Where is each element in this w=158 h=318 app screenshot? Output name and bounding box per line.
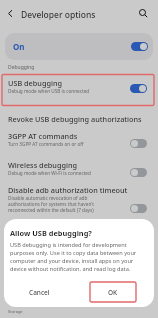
- staticText: device without notification, and read lo…: [10, 265, 131, 273]
- button[interactable]: [130, 139, 147, 148]
- staticText: Cancel: [29, 288, 50, 297]
- staticText: USB debugging: [8, 78, 62, 88]
- staticText: Allow USB debugging?: [10, 228, 92, 238]
- button[interactable]: [137, 7, 150, 20]
- staticText: purposes only. Use it to copy data betwe…: [10, 249, 137, 257]
- button[interactable]: Disable adb authorization timeout: [0, 185, 158, 213]
- button[interactable]: [130, 168, 147, 177]
- staticText: On: [13, 41, 25, 52]
- staticText: Storage: [8, 309, 23, 314]
- button[interactable]: [5, 8, 16, 19]
- button[interactable]: Wireless debugging: [0, 160, 158, 176]
- staticText: Debug mode when Wi-Fi is connected: [8, 170, 91, 176]
- staticText: USB debugging is intended for developmen…: [10, 241, 127, 249]
- staticText: Disable adb authorization timeout: [8, 185, 128, 195]
- button[interactable]: 3GPP AT commands: [0, 131, 158, 147]
- button[interactable]: OK: [90, 284, 136, 300]
- staticText: Debugging: [8, 64, 35, 71]
- staticText: Debug mode when USB is connected: [8, 88, 90, 94]
- button[interactable]: On: [5, 33, 153, 60]
- staticText: 3GPP AT commands: [8, 131, 78, 141]
- button[interactable]: [130, 84, 147, 93]
- staticText: OK: [108, 288, 118, 297]
- staticText: Turn 3GPP AT commands on or off: [8, 141, 84, 147]
- staticText: Developer options: [21, 9, 96, 21]
- staticText: Disable automatic revocation of adb: [8, 195, 88, 201]
- button[interactable]: USB debugging: [0, 78, 158, 94]
- staticText: reconnected within the default (7 days): [8, 207, 94, 213]
- button[interactable]: [131, 42, 148, 51]
- staticText: authorizations for systems that haven't: [8, 201, 94, 207]
- staticText: Wireless debugging: [8, 160, 78, 170]
- button[interactable]: [130, 204, 147, 213]
- button[interactable]: Revoke USB debugging authorizations: [0, 114, 158, 124]
- button[interactable]: Cancel: [16, 284, 62, 300]
- staticText: Revoke USB debugging authorizations: [8, 114, 142, 124]
- staticText: computer and your device, install apps o…: [10, 257, 134, 265]
